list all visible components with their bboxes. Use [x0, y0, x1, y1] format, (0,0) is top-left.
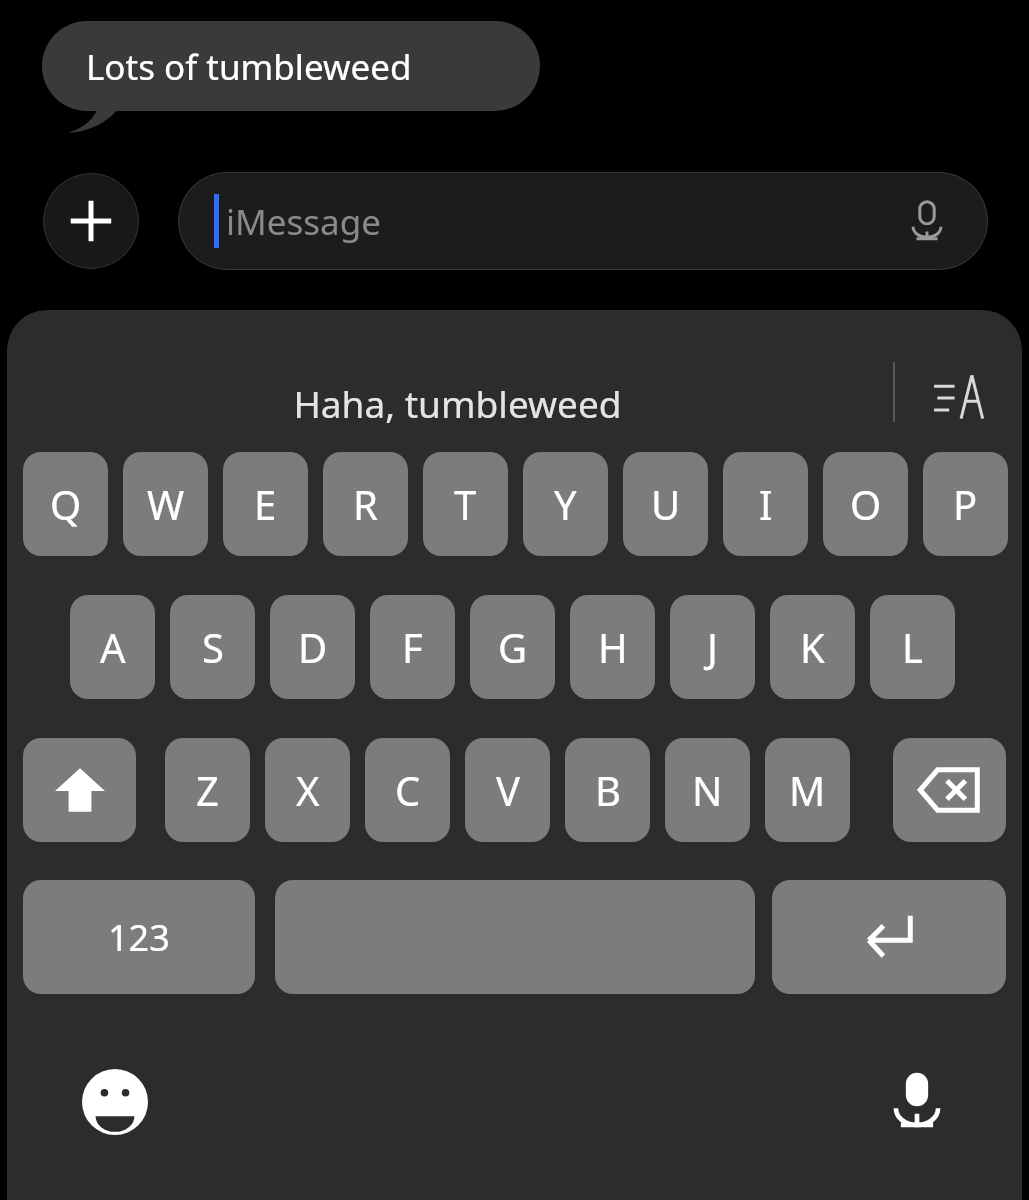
staticText: N [692, 763, 723, 817]
staticText: S [202, 620, 224, 674]
staticText: 123 [108, 913, 170, 962]
staticText: Lots of tumbleweed [86, 43, 412, 91]
staticText: C [395, 763, 421, 817]
button[interactable]: Backspace [893, 738, 1006, 842]
staticText: E [254, 477, 277, 531]
button[interactable]: O [823, 452, 908, 556]
staticText: U [651, 477, 681, 531]
staticText: D [298, 620, 328, 674]
button[interactable]: N [665, 738, 750, 842]
staticText: G [498, 620, 528, 674]
staticText: H [598, 620, 628, 674]
button[interactable]: H [570, 595, 655, 699]
staticText: T [454, 477, 477, 531]
button[interactable]: G [470, 595, 555, 699]
button[interactable]: X [265, 738, 350, 842]
button[interactable]: Add attachment [43, 173, 139, 269]
button[interactable]: U [623, 452, 708, 556]
button[interactable]: Y [523, 452, 608, 556]
button[interactable]: Space [275, 880, 755, 994]
button[interactable]: Formatting [917, 354, 1003, 440]
button[interactable]: Q [23, 452, 108, 556]
button[interactable]: Emoji [75, 1062, 155, 1142]
button[interactable]: D [270, 595, 355, 699]
button[interactable]: iMessage [178, 172, 988, 270]
button[interactable]: Z [165, 738, 250, 842]
staticText: Z [196, 763, 219, 817]
staticText: Y [554, 477, 577, 531]
staticText: iMessage [226, 198, 381, 246]
button[interactable]: Voice input [875, 1058, 959, 1142]
button[interactable]: I [723, 452, 808, 556]
staticText: X [296, 763, 320, 817]
button[interactable]: E [223, 452, 308, 556]
staticText: A [100, 620, 126, 674]
button[interactable]: V [465, 738, 550, 842]
staticText: K [800, 620, 825, 674]
button[interactable]: T [423, 452, 508, 556]
button[interactable]: L [870, 595, 955, 699]
button[interactable]: 123 [23, 880, 255, 994]
staticText: W [147, 477, 185, 531]
button[interactable]: P [923, 452, 1008, 556]
button[interactable]: Shift [23, 738, 136, 842]
staticText: I [759, 477, 773, 531]
button[interactable]: F [370, 595, 455, 699]
button[interactable]: Return [772, 880, 1006, 994]
staticText: Q [50, 477, 82, 531]
staticText: L [902, 620, 923, 674]
button[interactable]: C [365, 738, 450, 842]
button[interactable]: Lots of tumbleweed [42, 21, 540, 117]
button[interactable]: B [565, 738, 650, 842]
button[interactable]: W [123, 452, 208, 556]
staticText: V [496, 763, 520, 817]
button[interactable]: M [765, 738, 850, 842]
button[interactable]: A [70, 595, 155, 699]
staticText: Haha, tumbleweed [293, 378, 622, 428]
button[interactable]: S [170, 595, 255, 699]
button[interactable]: J [670, 595, 755, 699]
staticText: B [595, 763, 621, 817]
button[interactable]: K [770, 595, 855, 699]
staticText: R [353, 477, 378, 531]
staticText: M [789, 763, 826, 817]
button[interactable]: R [323, 452, 408, 556]
button[interactable]: Dictate [896, 190, 958, 252]
staticText: P [953, 477, 978, 531]
staticText: O [850, 477, 882, 531]
button[interactable]: Haha, tumbleweed [127, 360, 787, 446]
staticText: F [402, 620, 423, 674]
staticText: J [707, 620, 718, 674]
